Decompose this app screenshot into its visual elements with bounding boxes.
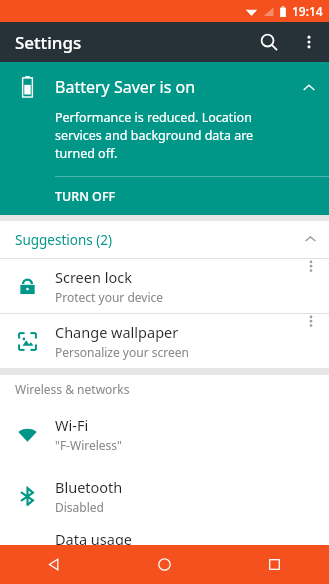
- button[interactable]: More options: [293, 314, 329, 368]
- staticText: Change wallpaper: [55, 322, 179, 342]
- staticText: "F-Wireless": [55, 437, 122, 453]
- button[interactable]: Back: [0, 545, 109, 584]
- staticText: Suggestions (2): [15, 231, 113, 249]
- staticText: 19:14: [292, 3, 323, 19]
- staticText: Data usage: [55, 529, 132, 545]
- button[interactable]: Change wallpaper: [0, 314, 329, 368]
- button[interactable]: More options: [293, 259, 329, 313]
- staticText: Disabled: [55, 499, 104, 515]
- staticText: Battery Saver is on: [55, 76, 196, 98]
- staticText: Wireless & networks: [15, 381, 130, 397]
- button[interactable]: TURN OFF: [0, 177, 329, 215]
- button[interactable]: Suggestions (2): [0, 221, 329, 258]
- staticText: Protect your device: [55, 289, 164, 305]
- button[interactable]: More options: [289, 22, 329, 62]
- staticText: Settings: [15, 31, 82, 54]
- button[interactable]: Battery Saver is on: [0, 62, 329, 215]
- button[interactable]: Bluetooth: [0, 465, 329, 527]
- staticText: Screen lock: [55, 267, 132, 287]
- staticText: Wi-Fi: [55, 415, 89, 435]
- button[interactable]: Wi-Fi: [0, 403, 329, 465]
- button[interactable]: Search: [249, 22, 289, 62]
- button[interactable]: Data usage: [0, 527, 329, 545]
- staticText: Bluetooth: [55, 477, 123, 497]
- staticText: Personalize your screen: [55, 344, 189, 360]
- button[interactable]: Recents: [219, 545, 329, 584]
- button[interactable]: Collapse: [289, 76, 329, 100]
- button[interactable]: Screen lock: [0, 259, 329, 313]
- staticText: TURN OFF: [55, 188, 116, 205]
- button[interactable]: Home: [109, 545, 219, 584]
- staticText: Performance is reduced. Location service…: [55, 109, 281, 162]
